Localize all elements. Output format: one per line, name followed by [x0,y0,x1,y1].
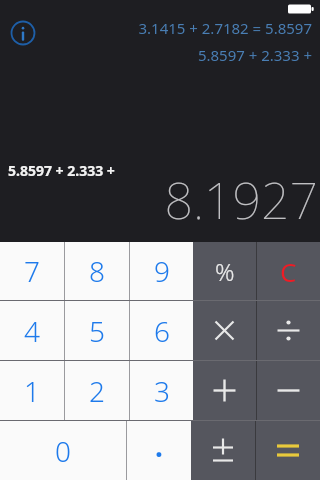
button[interactable]: Info [10,20,36,46]
button[interactable]: 9 [130,242,193,300]
button[interactable]: Divide [257,301,320,360]
staticText: 1 [24,372,40,410]
staticText: 6 [154,312,170,350]
button[interactable]: Minus [257,361,320,420]
staticText: 8 [89,252,105,290]
staticText: 9 [154,252,170,290]
button[interactable]: C [257,242,320,300]
button[interactable]: 8 [65,242,129,300]
staticText: 2 [89,372,105,410]
button[interactable]: 4 [0,301,64,360]
staticText: 0 [55,432,71,470]
button[interactable]: . [127,421,191,480]
button[interactable]: 5 [65,301,129,360]
button[interactable]: Plus minus [191,421,255,480]
staticText: 5 [89,312,105,350]
staticText: 3.1415 + 2.7182 = 5.8597 [138,18,312,38]
button[interactable]: 2 [65,361,129,420]
staticText: % [215,255,235,288]
button[interactable]: 3 [130,361,193,420]
staticText: 4 [24,312,40,350]
button[interactable]: 6 [130,301,193,360]
staticText: . [155,427,163,465]
button[interactable]: Equals [256,421,320,480]
staticText: C [280,254,297,289]
button[interactable]: 7 [0,242,64,300]
staticText: 5.8597 + 2.333 + [197,45,312,65]
staticText: 7 [24,252,40,290]
staticText: 3 [154,372,170,410]
staticText: 8.1927 [164,166,318,234]
button[interactable]: % [193,242,256,300]
button[interactable]: 1 [0,361,64,420]
button[interactable]: 0 [0,421,126,480]
staticText: 5.8597 + 2.333 + [8,161,115,180]
button[interactable]: Plus [193,361,256,420]
button[interactable]: Multiply [193,301,256,360]
